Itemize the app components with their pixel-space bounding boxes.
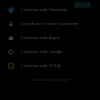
staticText: Select account to log in (31, 77, 70, 82)
staticText: Continue with Apple (21, 35, 60, 40)
button[interactable]: Use phone / email / username (0, 16, 100, 30)
button[interactable]: Continue with Facebook (0, 2, 100, 16)
staticText: Continue with Google (21, 49, 63, 54)
staticText: Use phone / email / username (21, 21, 79, 26)
button[interactable]: Continue with Apple (0, 30, 100, 44)
button[interactable]: Continue with Google (0, 44, 100, 58)
button[interactable]: Continue with TikTok (0, 58, 100, 72)
staticText: Continue with TikTok (21, 63, 62, 68)
button[interactable]: Last used (74, 2, 91, 8)
staticText: Continue with Facebook (21, 7, 68, 12)
staticText: Last used (75, 3, 90, 7)
